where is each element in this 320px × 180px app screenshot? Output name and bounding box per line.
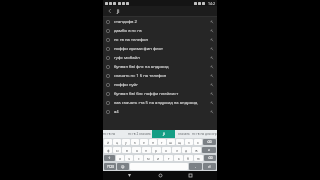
button[interactable]: н: [149, 139, 157, 145]
staticText: ji: [163, 132, 165, 136]
button[interactable]: ⌫: [203, 139, 216, 145]
staticText: ☺: [121, 165, 125, 169]
staticText: е: [143, 140, 145, 145]
button[interactable]: стандофв 2: [103, 17, 217, 26]
button[interactable]: ц: [113, 139, 121, 145]
staticText: ч: [128, 156, 130, 161]
staticText: к: [134, 140, 136, 145]
button[interactable]: .: [189, 163, 202, 170]
staticText: ⌫: [208, 156, 213, 160]
staticText: м: [147, 156, 150, 161]
staticText: д: [185, 148, 188, 153]
button[interactable]: т: [164, 155, 173, 161]
button[interactable]: о: [162, 147, 171, 153]
button[interactable]: ь: [174, 155, 183, 161]
button[interactable]: нс гв 2 скачать: [127, 130, 152, 138]
button[interactable]: булван бвї флс на андроид: [103, 62, 217, 71]
button[interactable]: Recents: [186, 171, 195, 180]
staticText: булван бвї блс ноффи плейлист: [114, 91, 208, 97]
button[interactable]: з: [185, 139, 193, 145]
staticText: ⇧: [108, 156, 111, 160]
button[interactable]: ji: [152, 130, 175, 138]
staticText: стандофв 2: [114, 19, 208, 25]
staticText: п: [145, 148, 148, 153]
button[interactable]: ⇧: [104, 155, 115, 161]
staticText: скачать нс 1 6 на телефон: [114, 73, 208, 79]
button[interactable]: ч: [125, 155, 133, 161]
staticText: булван бвї флс на андроид: [114, 64, 208, 70]
button[interactable]: а: [132, 147, 141, 153]
staticText: н: [152, 140, 155, 145]
button[interactable]: к: [131, 139, 139, 145]
button[interactable]: в: [122, 147, 131, 153]
staticText: 14:2: [208, 1, 215, 6]
button[interactable]: гуфс мобайл: [103, 53, 217, 62]
button[interactable]: Back: [125, 171, 134, 180]
staticText: р: [155, 148, 158, 153]
staticText: нс гв на телефон: [103, 132, 127, 136]
button[interactable]: скачать: [175, 130, 192, 138]
button[interactable]: у: [122, 139, 130, 145]
button[interactable]: г: [158, 139, 166, 145]
button[interactable]: ↵: [202, 147, 216, 153]
button[interactable]: ы: [113, 147, 121, 153]
staticText: г: [161, 140, 163, 145]
button[interactable]: ф: [104, 147, 112, 153]
button[interactable]: Home: [156, 171, 165, 180]
staticText: у: [125, 140, 127, 145]
staticText: ⌫: [207, 140, 212, 144]
staticText: дамбо в нс гв: [114, 28, 208, 34]
staticText: ь: [178, 156, 180, 161]
button[interactable]: ?123: [104, 163, 116, 170]
button[interactable]: скачать нс 1 6 на телефон: [103, 71, 217, 80]
button[interactable]: нс гв на телефон: [103, 35, 217, 44]
staticText: ?123: [107, 165, 114, 169]
staticText: щ: [178, 140, 182, 145]
staticText: ноффи пуйг: [114, 82, 208, 88]
button[interactable]: дамбо в нс гв: [103, 26, 217, 35]
button[interactable]: как скачать гта 5 на андроид на андроид: [103, 98, 217, 107]
button[interactable]: р: [152, 147, 161, 153]
staticText: й: [107, 140, 110, 145]
staticText: о: [165, 148, 168, 153]
button[interactable]: ноффи пуйг: [103, 80, 217, 89]
staticText: в: [126, 148, 128, 153]
staticText: а: [136, 148, 138, 153]
staticText: ы: [116, 148, 119, 153]
staticText: б: [187, 156, 190, 161]
button[interactable]: й: [104, 139, 112, 145]
button[interactable]: ж: [192, 147, 201, 153]
button[interactable]: л: [172, 147, 181, 153]
staticText: гуфс мобайл: [114, 55, 208, 61]
staticText: л: [176, 148, 178, 153]
button[interactable]: х: [194, 139, 202, 145]
staticText: как скачать гта 5 на андроид на андроид: [114, 100, 208, 106]
button[interactable]: ю: [194, 155, 203, 161]
button[interactable]: с: [134, 155, 143, 161]
button[interactable]: нс гв на для игр: [192, 130, 217, 138]
button[interactable]: ноффи ирими фип флот: [103, 44, 217, 53]
button[interactable]: я: [116, 155, 124, 161]
button[interactable]: щ: [176, 139, 184, 145]
staticText: .: [195, 165, 196, 169]
button[interactable]: д: [182, 147, 191, 153]
staticText: нс гв на телефон: [114, 37, 208, 43]
button[interactable]: ☺: [117, 163, 129, 170]
staticText: х: [197, 140, 199, 145]
button[interactable]: а4: [103, 107, 217, 116]
staticText: нс гв на для игр: [192, 132, 217, 136]
button[interactable]: м: [144, 155, 153, 161]
button[interactable]: ш: [167, 139, 175, 145]
button[interactable]: ⏎: [203, 163, 216, 170]
staticText: ji: [117, 8, 214, 14]
button[interactable]: ⌫: [204, 155, 216, 161]
button[interactable]: Back: [106, 7, 114, 15]
button[interactable]: п: [142, 147, 151, 153]
button[interactable]: б: [184, 155, 193, 161]
button[interactable]: и: [154, 155, 163, 161]
button[interactable]: нс гв на телефон: [103, 130, 127, 138]
button[interactable]: булван бвї блс ноффи плейлист: [103, 89, 217, 98]
staticText: з: [188, 140, 190, 145]
button[interactable]: е: [140, 139, 148, 145]
